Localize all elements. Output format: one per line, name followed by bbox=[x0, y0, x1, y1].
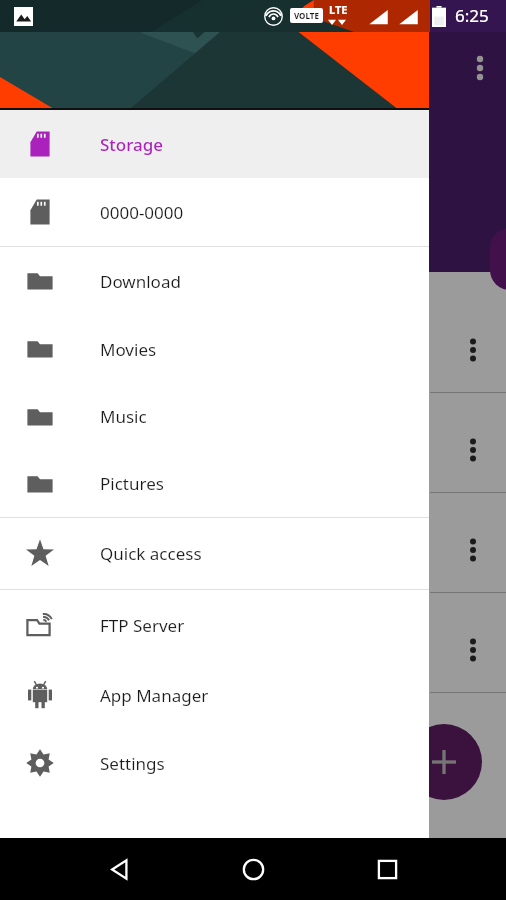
staticText: Music bbox=[100, 405, 147, 428]
button[interactable]: More options bbox=[440, 300, 506, 400]
button[interactable]: Settings bbox=[0, 729, 429, 797]
button[interactable]: Pictures bbox=[0, 450, 429, 517]
button[interactable]: More options bbox=[440, 400, 506, 500]
button[interactable]: Quick access bbox=[0, 518, 429, 589]
staticText: 6:25 bbox=[455, 4, 489, 27]
button[interactable]: Download bbox=[0, 247, 429, 315]
staticText: 0000-0000 bbox=[100, 201, 184, 224]
button[interactable]: App Manager bbox=[0, 661, 429, 729]
button[interactable]: Storage bbox=[0, 110, 429, 178]
button[interactable]: Recent apps bbox=[352, 838, 422, 900]
button[interactable]: Back bbox=[84, 838, 154, 900]
staticText: FTP Server bbox=[100, 614, 185, 637]
button[interactable]: More options bbox=[460, 48, 500, 88]
staticText: Download bbox=[100, 270, 181, 293]
button[interactable]: Add bbox=[406, 724, 482, 800]
staticText: LTE bbox=[329, 2, 348, 17]
button[interactable]: Music bbox=[0, 383, 429, 450]
button[interactable]: Home bbox=[218, 838, 288, 900]
staticText: App Manager bbox=[100, 684, 209, 707]
staticText: Storage bbox=[100, 133, 164, 156]
button[interactable]: Movies bbox=[0, 315, 429, 383]
button[interactable]: 0000-0000 bbox=[0, 178, 429, 246]
staticText: Quick access bbox=[100, 542, 202, 565]
staticText: Movies bbox=[100, 338, 157, 361]
button[interactable]: More options bbox=[440, 500, 506, 600]
staticText: Settings bbox=[100, 752, 165, 775]
staticText: VOLTE bbox=[294, 10, 319, 21]
button[interactable]: FTP Server bbox=[0, 590, 429, 661]
staticText: Pictures bbox=[100, 472, 164, 495]
button[interactable]: More options bbox=[440, 600, 506, 700]
